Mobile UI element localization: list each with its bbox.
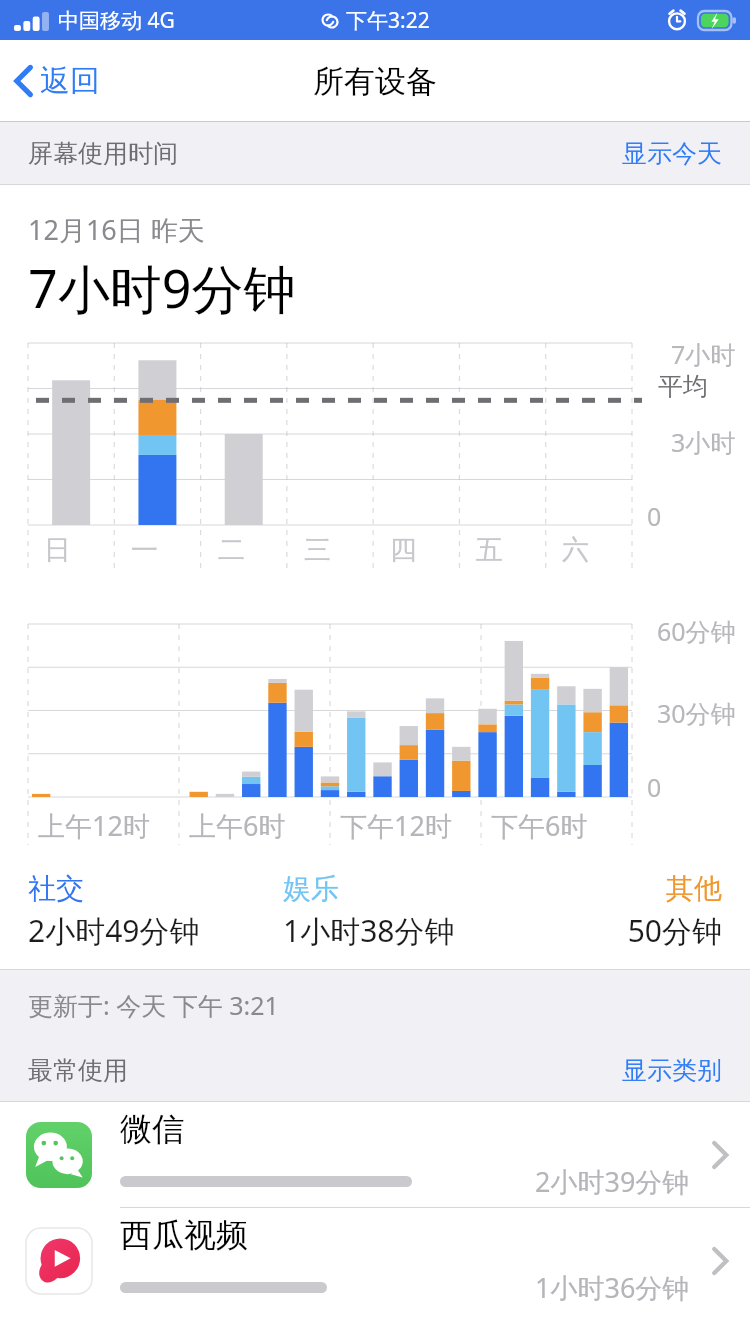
staticText: 1小时38分钟	[283, 910, 538, 951]
staticText: 平均	[658, 371, 708, 402]
button[interactable]: 微信	[0, 1102, 750, 1207]
staticText: 微信	[120, 1109, 184, 1149]
staticText: 上午12时	[38, 807, 150, 844]
staticText: 显示类别	[622, 1055, 722, 1086]
staticText: 更新于: 今天 下午 3:21	[28, 988, 279, 1022]
staticText: 下午3:22	[346, 6, 430, 35]
staticText: 娱乐	[283, 871, 538, 906]
staticText: 六	[562, 533, 589, 567]
staticText: 返回	[40, 62, 100, 100]
staticText: 西瓜视频	[120, 1215, 248, 1255]
staticText: 二	[218, 533, 245, 567]
staticText: 所有设备	[313, 62, 437, 101]
staticText: 0	[647, 770, 662, 804]
staticText: 下午6时	[491, 807, 588, 844]
staticText: 社交	[28, 871, 283, 906]
staticText: 最常使用	[28, 1055, 128, 1086]
staticText: 30分钟	[657, 696, 736, 730]
staticText: 中国移动 4G	[58, 6, 175, 35]
staticText: 7小时9分钟	[28, 252, 296, 323]
staticText: 一	[131, 533, 158, 567]
staticText: 12月16日 昨天	[28, 211, 205, 248]
staticText: 日	[44, 533, 71, 567]
button[interactable]: 返回	[0, 54, 114, 108]
staticText: 3小时	[671, 425, 736, 459]
other: 展开 西瓜视频	[690, 1208, 750, 1313]
staticText: 0	[647, 499, 662, 533]
staticText: 1小时36分钟	[535, 1269, 690, 1306]
staticText: 五	[476, 533, 503, 567]
staticText: 四	[390, 533, 417, 567]
other: 展开 微信	[690, 1102, 750, 1207]
button[interactable]: 西瓜视频	[0, 1208, 750, 1313]
staticText: 三	[304, 533, 331, 567]
staticText: 60分钟	[657, 614, 736, 648]
staticText: 下午12时	[340, 807, 452, 844]
button[interactable]: 显示今天	[594, 130, 750, 177]
staticText: 其他	[538, 871, 722, 906]
staticText: 显示今天	[622, 138, 722, 169]
button[interactable]: 显示类别	[594, 1047, 750, 1094]
staticText: 上午6时	[189, 807, 286, 844]
staticText: 2小时39分钟	[535, 1163, 690, 1200]
staticText: 屏幕使用时间	[28, 138, 178, 169]
staticText: 7小时	[671, 337, 736, 371]
staticText: 2小时49分钟	[28, 910, 283, 951]
staticText: 50分钟	[538, 910, 722, 951]
